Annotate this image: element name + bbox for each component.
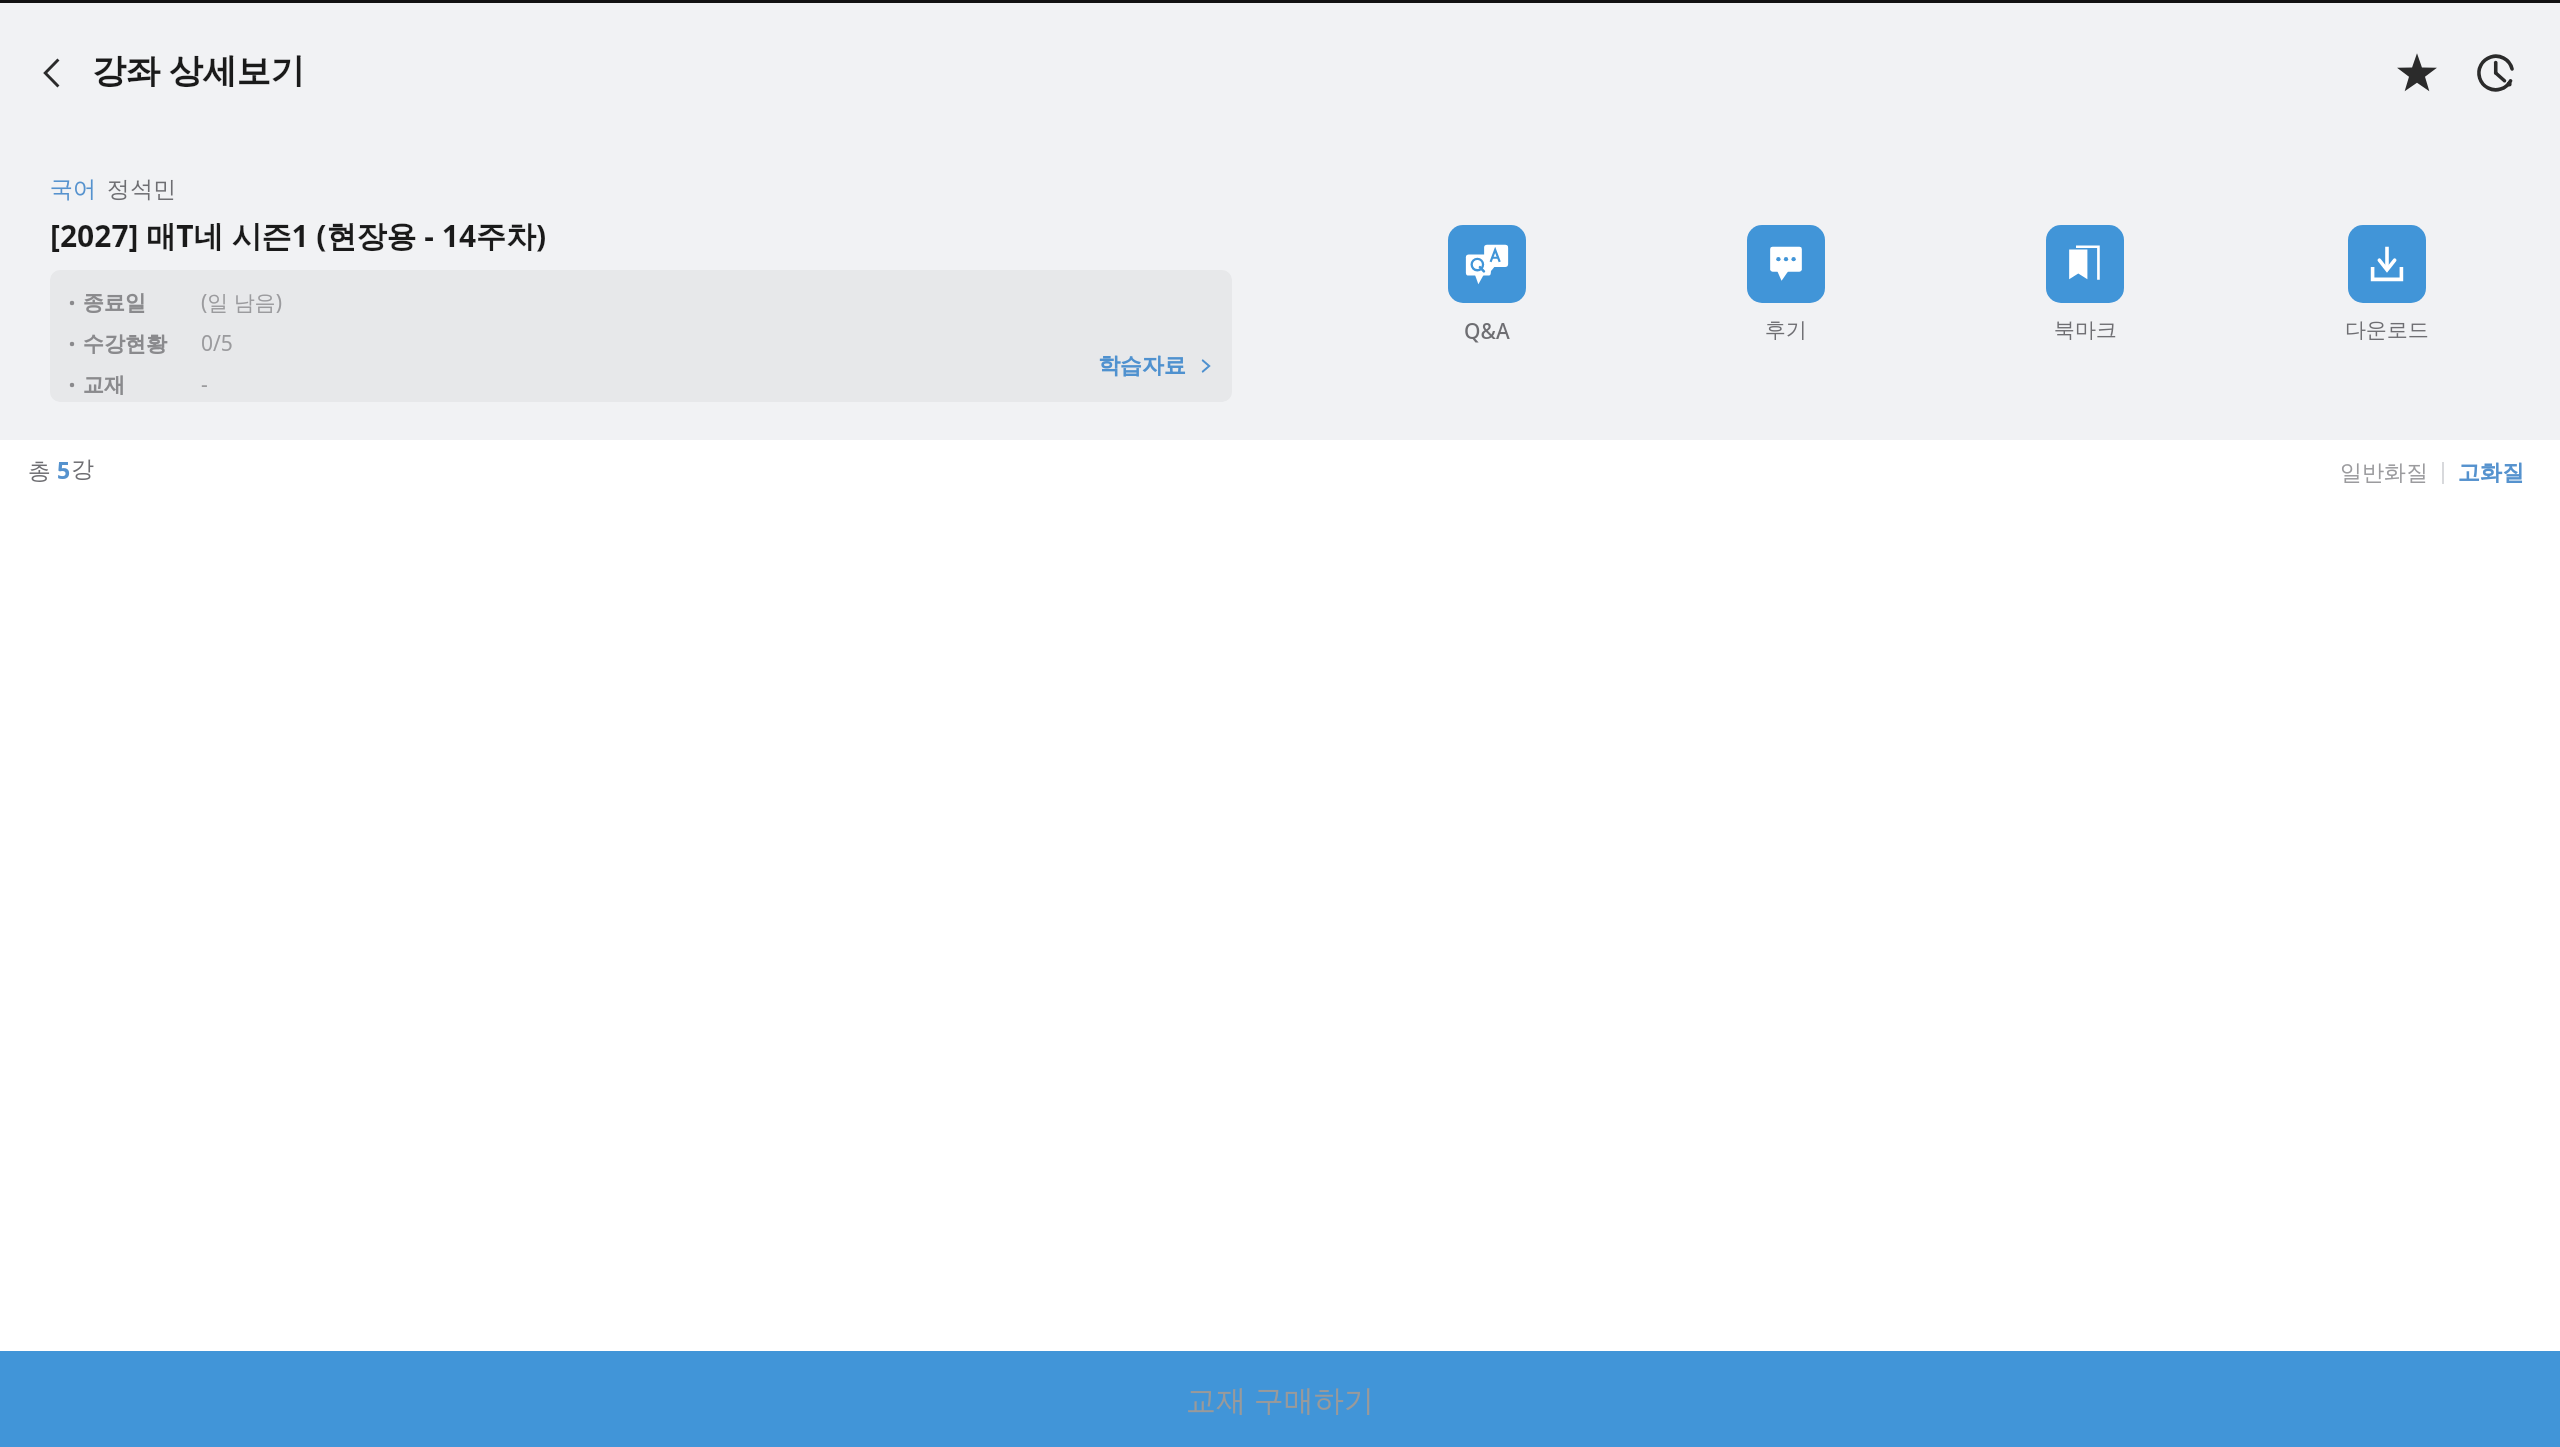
- button[interactable]: 교재 구매하기: [0, 1351, 2560, 1447]
- staticText: Q&A: [1464, 317, 1510, 346]
- button[interactable]: 일반화질: [2340, 459, 2428, 487]
- staticText: 학습자료: [1098, 352, 1186, 380]
- staticText: -: [201, 370, 208, 399]
- staticText: 고화질: [2458, 459, 2524, 487]
- staticText: 국어: [50, 175, 96, 204]
- button[interactable]: 학습자료: [1098, 352, 1216, 380]
- staticText: 교재 구매하기: [1186, 1379, 1374, 1420]
- staticText: 다운로드: [2345, 317, 2429, 343]
- staticText: (일 남음): [201, 288, 283, 317]
- button[interactable]: 고화질: [2458, 459, 2524, 487]
- staticText: [2027] 매T네 시즌1 (현장용 - 14주차): [50, 215, 547, 256]
- button[interactable]: 다운로드: [2337, 225, 2437, 343]
- staticText: 0/5: [201, 329, 233, 358]
- button[interactable]: Back: [22, 43, 82, 103]
- button[interactable]: Q&A: [1440, 225, 1534, 346]
- staticText: 강좌 상세보기: [92, 47, 305, 93]
- button[interactable]: 후기: [1739, 225, 1833, 343]
- staticText: 후기: [1765, 317, 1807, 343]
- staticText: 교재: [83, 372, 125, 398]
- staticText: 총: [28, 454, 57, 485]
- staticText: 5: [57, 454, 71, 485]
- button[interactable]: Recent: [2465, 41, 2529, 105]
- staticText: 북마크: [2054, 317, 2117, 343]
- staticText: 수강현황: [83, 331, 167, 357]
- staticText: 강: [71, 455, 94, 484]
- button[interactable]: Favorite: [2385, 41, 2449, 105]
- staticText: 일반화질: [2340, 459, 2428, 487]
- staticText: 종료일: [83, 290, 146, 316]
- button[interactable]: 북마크: [2038, 225, 2132, 343]
- staticText: 정석민: [107, 175, 176, 204]
